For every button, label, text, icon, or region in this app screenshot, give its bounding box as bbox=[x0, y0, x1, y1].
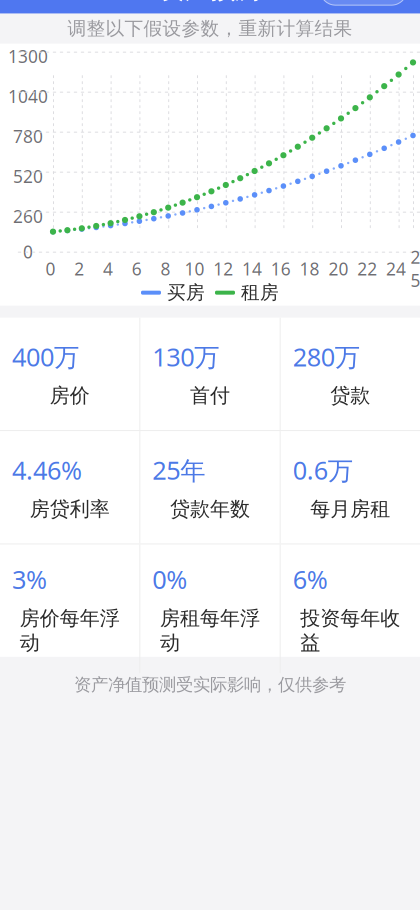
button[interactable]: 0% bbox=[140, 544, 280, 673]
button[interactable]: 400万 bbox=[0, 322, 139, 426]
staticText: 房价每年浮动 bbox=[20, 606, 120, 655]
staticText: 14 bbox=[242, 257, 262, 280]
staticText: 首付 bbox=[190, 383, 230, 408]
staticText: 20 bbox=[328, 257, 348, 280]
staticText: 6 bbox=[132, 257, 142, 280]
staticText: 24 bbox=[386, 257, 406, 280]
staticText: 资产预测 bbox=[160, 0, 260, 5]
staticText: 4 bbox=[103, 257, 113, 280]
staticText: 资产净值预测受实际影响，仅供参考 bbox=[74, 674, 346, 695]
button[interactable]: 25年 bbox=[140, 435, 280, 539]
staticText: 房价 bbox=[50, 383, 90, 408]
staticText: 22 bbox=[357, 257, 377, 280]
staticText: 0% bbox=[152, 562, 187, 596]
button[interactable]: 0.6万 bbox=[281, 435, 420, 539]
staticText: 16 bbox=[271, 257, 291, 280]
staticText: 4.46% bbox=[12, 453, 82, 487]
staticText: 0.6万 bbox=[293, 453, 353, 487]
staticText: 贷款年数 bbox=[170, 497, 250, 521]
staticText: 25年 bbox=[152, 453, 205, 487]
staticText: 3% bbox=[12, 562, 47, 596]
staticText: 25 bbox=[410, 246, 420, 292]
staticText: 780 bbox=[13, 125, 43, 148]
staticText: 1300 bbox=[8, 45, 48, 68]
staticText: 6% bbox=[293, 562, 328, 596]
button[interactable]: 280万 bbox=[281, 322, 420, 426]
button[interactable]: 130万 bbox=[140, 322, 280, 426]
staticText: 130万 bbox=[152, 340, 219, 373]
staticText: 买房 bbox=[167, 281, 205, 304]
staticText: 12 bbox=[213, 257, 233, 280]
staticText: 房贷利率 bbox=[30, 497, 110, 521]
staticText: 260 bbox=[13, 205, 43, 228]
staticText: 贷款 bbox=[330, 383, 370, 408]
staticText: 8 bbox=[161, 257, 171, 280]
staticText: 1040 bbox=[8, 85, 48, 108]
staticText: 投资每年收益 bbox=[300, 606, 400, 655]
staticText: 0 bbox=[45, 257, 55, 280]
staticText: 0 bbox=[23, 240, 33, 263]
staticText: 调整以下假设参数，重新计算结果 bbox=[67, 17, 352, 40]
staticText: 10 bbox=[184, 257, 204, 280]
staticText: 每月房租 bbox=[310, 497, 390, 521]
staticText: 280万 bbox=[293, 340, 360, 373]
button[interactable]: 4.46% bbox=[0, 435, 139, 539]
staticText: 520 bbox=[13, 165, 43, 188]
button[interactable]: 6% bbox=[281, 544, 420, 673]
staticText: 租房 bbox=[241, 281, 279, 304]
button[interactable]: 3% bbox=[0, 544, 139, 673]
staticText: 房租每年浮动 bbox=[160, 606, 260, 655]
staticText: 18 bbox=[300, 257, 320, 280]
staticText: 2 bbox=[74, 257, 84, 280]
button[interactable]: More options bbox=[320, 0, 407, 5]
staticText: 400万 bbox=[12, 340, 79, 373]
